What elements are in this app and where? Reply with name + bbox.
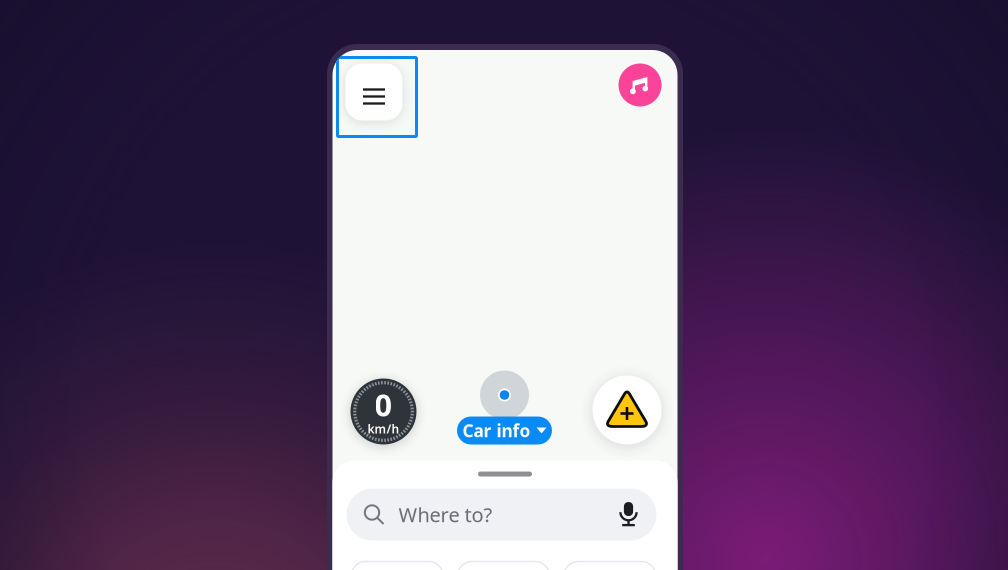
staticText: Where to? bbox=[398, 501, 492, 528]
button[interactable]: Music bbox=[618, 63, 661, 106]
button[interactable]: Home bbox=[351, 561, 443, 570]
button[interactable]: Saved bbox=[564, 561, 655, 570]
button[interactable]: Menu bbox=[337, 57, 416, 136]
staticText: Car info bbox=[462, 419, 530, 442]
button[interactable]: Report hazard bbox=[592, 375, 661, 444]
button[interactable]: Speed bbox=[350, 378, 416, 444]
staticText: 0 bbox=[374, 384, 392, 425]
staticText: km/h bbox=[367, 421, 399, 437]
button[interactable]: Work bbox=[458, 561, 549, 570]
button[interactable]: Car info bbox=[457, 416, 552, 444]
button[interactable]: Where to? bbox=[332, 488, 677, 540]
